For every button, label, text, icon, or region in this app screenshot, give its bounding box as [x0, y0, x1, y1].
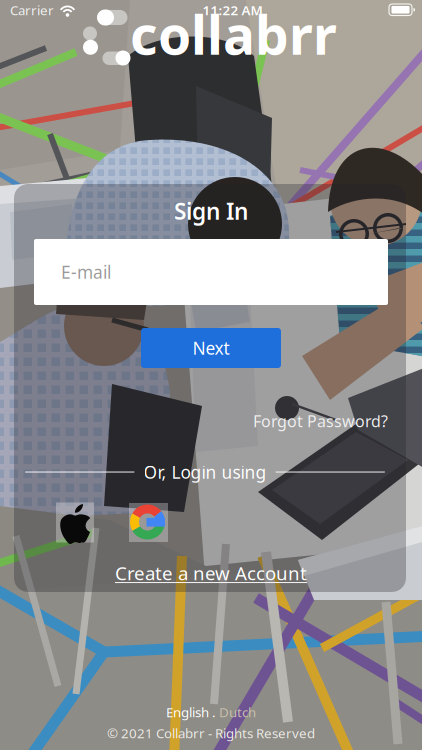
button[interactable]: E-mail [34, 239, 388, 305]
staticText: Next [192, 336, 229, 359]
button[interactable]: Sign in with Apple [56, 503, 94, 543]
staticText: E-mail [61, 260, 111, 283]
button[interactable]: Create a new Account [91, 561, 331, 585]
staticText: © 2021 Collabrr - Rights Reserved [107, 724, 315, 742]
staticText: Create a new Account [115, 561, 307, 585]
staticText: Forgot Password? [253, 410, 388, 432]
staticText: . [209, 703, 219, 721]
button[interactable]: Forgot Password? [228, 411, 388, 431]
staticText: collabrr [130, 0, 337, 69]
staticText: Dutch [219, 703, 256, 721]
staticText: 11:22 AM [202, 1, 262, 19]
button[interactable]: Sign in with Google [129, 503, 168, 542]
staticText: Or, Login using [143, 460, 266, 483]
button[interactable]: Next [141, 328, 281, 368]
staticText: Carrier [10, 1, 54, 19]
button[interactable]: English [166, 703, 209, 721]
staticText: English [166, 703, 209, 721]
button[interactable]: Dutch [219, 703, 256, 721]
staticText: Sign In [174, 196, 248, 226]
